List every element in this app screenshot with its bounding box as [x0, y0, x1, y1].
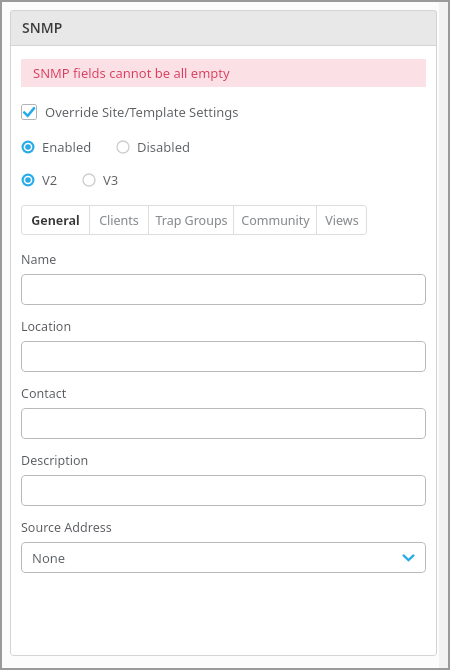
staticText: Enabled: [42, 138, 92, 156]
staticText: V2: [42, 171, 58, 189]
button[interactable]: Disabled: [116, 138, 191, 156]
button[interactable]: Views: [317, 205, 367, 235]
staticText: Location: [21, 318, 72, 335]
button[interactable]: Clients: [90, 205, 148, 235]
button[interactable]: General: [21, 205, 89, 235]
button[interactable]: V3: [82, 171, 119, 189]
staticText: V3: [103, 171, 119, 189]
staticText: Community: [241, 212, 310, 229]
staticText: Override Site/Template Settings: [45, 103, 239, 121]
button[interactable]: Contact input field: [21, 408, 426, 439]
staticText: Trap Groups: [155, 212, 228, 229]
staticText: General: [31, 212, 80, 229]
staticText: Source Address: [21, 519, 112, 536]
staticText: None: [32, 549, 66, 567]
staticText: Views: [325, 212, 359, 229]
staticText: SNMP: [22, 18, 63, 37]
button[interactable]: Trap Groups: [149, 205, 233, 235]
staticText: Description: [21, 452, 89, 469]
button[interactable]: Description input field: [21, 475, 426, 506]
button[interactable]: Community: [234, 205, 316, 235]
button[interactable]: Location input field: [21, 341, 426, 372]
staticText: Name: [21, 251, 57, 268]
other: Override Site/Template Settings checkbox: [21, 104, 37, 120]
staticText: Contact: [21, 385, 67, 402]
button[interactable]: Override Site/Template Settings checkbox: [21, 102, 239, 122]
staticText: Clients: [99, 212, 139, 229]
staticText: SNMP fields cannot be all empty: [33, 64, 230, 82]
button[interactable]: Name input field: [21, 274, 426, 305]
button[interactable]: V2: [21, 171, 58, 189]
staticText: Disabled: [137, 138, 191, 156]
button[interactable]: Enabled: [21, 138, 92, 156]
button[interactable]: None: [21, 542, 426, 573]
